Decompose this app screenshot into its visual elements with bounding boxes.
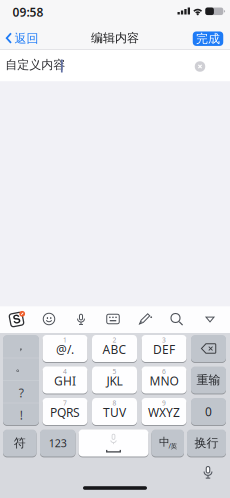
staticText: Ｓ	[10, 312, 22, 327]
button[interactable]: 返回	[5, 30, 39, 46]
staticText: 编辑内容	[91, 31, 139, 45]
button[interactable]: 7	[42, 397, 87, 425]
staticText: 完成	[196, 31, 220, 46]
staticText: 0	[205, 403, 212, 419]
staticText: @/.	[56, 341, 74, 357]
staticText: DEF	[153, 341, 175, 357]
button[interactable]: ，	[3, 334, 39, 425]
staticText: !	[20, 407, 23, 423]
button[interactable]: 1	[42, 334, 87, 362]
button[interactable]: 0	[191, 397, 226, 425]
button[interactable]: 符	[3, 429, 36, 457]
button[interactable]	[78, 429, 148, 457]
staticText: 中	[159, 435, 170, 448]
button[interactable]	[106, 313, 120, 325]
staticText: 返回	[14, 31, 38, 46]
button[interactable]: Ｓ	[8, 310, 26, 328]
button[interactable]: 6	[141, 366, 186, 394]
button[interactable]	[202, 465, 214, 480]
button[interactable]: 完成	[193, 31, 223, 46]
button[interactable]: 3	[141, 334, 186, 362]
button[interactable]: 123	[40, 429, 75, 457]
button[interactable]: 换行	[187, 429, 226, 457]
staticText: ABC	[102, 341, 126, 357]
button[interactable]: 2	[92, 334, 137, 362]
staticText: 1	[63, 336, 67, 344]
staticText: 3	[162, 336, 166, 344]
staticText: 自定义内容	[5, 57, 65, 72]
staticText: 5	[112, 367, 116, 376]
staticText: /英	[168, 442, 177, 450]
staticText: 符	[14, 436, 26, 450]
staticText: GHI	[54, 373, 76, 389]
button[interactable]	[42, 312, 55, 325]
staticText: ，	[15, 340, 26, 353]
staticText: MNO	[149, 373, 178, 389]
staticText: 6	[162, 367, 166, 376]
staticText: ?	[19, 385, 24, 401]
staticText: 9	[162, 399, 166, 407]
staticText: WXYZ	[148, 404, 180, 420]
staticText: 4	[63, 367, 67, 376]
button[interactable]: 中	[151, 429, 184, 457]
button[interactable]: 8	[92, 397, 137, 425]
staticText: 7	[63, 399, 67, 407]
staticText: 8	[112, 399, 116, 407]
staticText: PQRS	[50, 404, 80, 420]
button[interactable]	[138, 313, 152, 325]
staticText: 换行	[194, 436, 218, 450]
button[interactable]	[205, 316, 215, 323]
staticText: JKL	[106, 373, 122, 389]
staticText: 123	[49, 436, 67, 450]
button[interactable]: 4	[42, 366, 87, 394]
staticText: 09:58	[12, 4, 43, 20]
button[interactable]	[195, 61, 205, 72]
staticText: 2	[112, 336, 116, 344]
button[interactable]: 重输	[191, 366, 226, 394]
button[interactable]	[191, 334, 226, 362]
staticText: TUV	[103, 404, 126, 420]
staticText: 重输	[196, 373, 220, 387]
button[interactable]: 5	[92, 366, 137, 394]
button[interactable]: 9	[141, 397, 186, 425]
staticText: 。	[15, 361, 26, 374]
button[interactable]	[170, 313, 183, 326]
button[interactable]	[75, 313, 86, 326]
